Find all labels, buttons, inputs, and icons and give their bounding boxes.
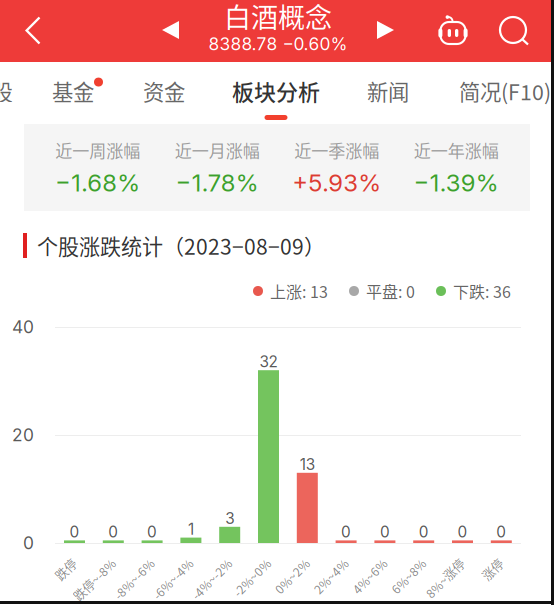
staticText: 8%~涨停 [428,586,477,604]
staticText: 近一月涨幅 [175,138,260,162]
staticText: 32 [259,352,277,371]
staticText: 3 [225,509,234,528]
button[interactable]: AI assistant [424,0,480,62]
button[interactable]: 资金 [120,62,208,119]
staticText: 个股涨跌统计（2023−08−09） [37,230,325,261]
staticText: 1 [188,520,194,538]
staticText: 跌停~-8% [74,586,127,604]
staticText: 0%~2% [278,586,321,604]
staticText: -6%~-4% [154,586,205,604]
staticText: −1.39% [414,168,499,197]
staticText: 简况(F10) [459,76,551,106]
button[interactable]: Back [0,0,56,62]
staticText: 近一周涨幅 [55,138,140,162]
staticText: 0 [108,523,118,541]
staticText: 涨停 [491,586,515,604]
staticText: 平盘: 0 [366,279,415,303]
staticText: 新闻 [367,76,409,106]
button[interactable]: Next sector [360,0,410,62]
staticText: −1.68% [55,168,140,197]
staticText: 白酒概念 [224,0,332,36]
staticText: 4%~6% [356,586,399,604]
button[interactable]: 简况(F10) [450,62,554,119]
staticText: -4%~-2% [193,586,244,604]
staticText: 下跌: 36 [453,279,511,303]
staticText: 13 [300,455,315,474]
staticText: 0 [341,523,351,541]
staticText: 40 [12,316,34,337]
staticText: 跌停 [65,586,89,604]
button[interactable]: Previous sector [146,0,196,62]
staticText: 6%~8% [395,586,438,604]
staticText: 20 [12,424,34,445]
staticText: -2%~0% [236,586,283,604]
staticText: +5.93% [292,168,381,197]
staticText: −1.78% [176,168,259,197]
staticText: 8388.78 −0.60% [208,33,347,54]
staticText: 0 [23,532,34,553]
staticText: 2%~4% [317,586,360,604]
staticText: 0 [419,523,429,541]
button[interactable]: 板块分析 [216,62,336,119]
staticText: -8%~-6% [115,586,166,604]
button[interactable]: 股 [0,62,26,119]
staticText: 板块分析 [232,75,320,107]
staticText: 0 [496,523,506,541]
staticText: 0 [457,523,467,541]
staticText: 0 [380,523,390,541]
staticText: 0 [147,523,157,541]
button[interactable]: 新闻 [344,62,432,119]
button[interactable]: 基金 [29,62,117,119]
staticText: 上涨: 13 [270,279,328,303]
staticText: 近一年涨幅 [414,138,499,162]
staticText: 近一季涨幅 [294,138,379,162]
staticText: 股 [0,76,12,106]
button[interactable]: Search [489,0,545,62]
staticText: 基金 [52,76,94,106]
staticText: 0 [69,523,79,541]
staticText: 资金 [143,76,185,106]
